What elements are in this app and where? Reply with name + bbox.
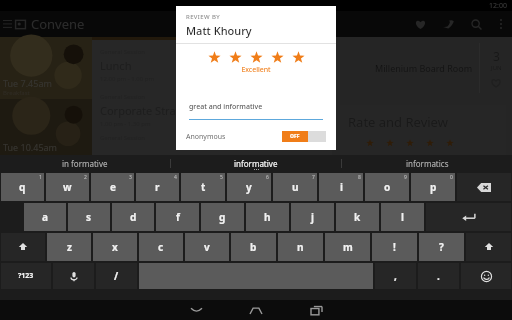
button[interactable]: q [1,173,44,201]
staticText: 3 [129,174,132,181]
button[interactable]: enter [426,203,511,231]
button[interactable]: o [365,173,409,201]
staticText: x [112,240,118,254]
staticText: r [155,180,160,194]
button[interactable]: More options [490,11,512,37]
staticText: Tue 7.45am [3,77,52,89]
staticText: 12:00 [489,1,507,11]
button[interactable]: j [291,203,334,231]
button[interactable]: Recent apps [286,300,346,320]
button[interactable]: z [47,233,91,261]
button[interactable]: d [112,203,154,231]
button[interactable]: in formative [0,155,170,172]
button[interactable]: Home [226,300,286,320]
button[interactable]: w [46,173,89,201]
button[interactable]: Hide keyboard [166,300,226,320]
staticText: s [86,210,92,224]
button[interactable]: t [181,173,225,201]
staticText: l [401,210,404,224]
button[interactable]: h [246,203,289,231]
staticText: c [158,240,164,254]
button[interactable]: back [457,173,511,201]
button[interactable]: General Session [100,48,332,83]
button[interactable]: p [411,173,455,201]
staticText: Rate and Review [348,113,448,131]
staticText: Tue 10.45am [3,141,58,153]
staticText: Corporate Strategy Pers [100,103,224,118]
staticText: 0 [450,174,453,181]
button[interactable]: x [93,233,137,261]
staticText: 3 [493,48,500,64]
staticText: 8 [358,174,361,181]
button[interactable]: s [68,203,110,231]
staticText: 1 [39,174,42,181]
staticText: Matt Khoury [186,23,252,38]
button[interactable]: l [381,203,424,231]
button[interactable]: Tue 7.45am [0,37,92,99]
staticText: Millenium Board Room [375,62,473,74]
button[interactable]: k [336,203,379,231]
button[interactable]: i [319,173,363,201]
button[interactable]: Tue 10.45am [0,99,92,155]
button[interactable]: y [227,173,271,201]
button[interactable]: b [231,233,276,261]
staticText: m [343,240,353,254]
button[interactable]: c [139,233,183,261]
button[interactable]: a [24,203,66,231]
button[interactable]: Rate 4 stars [267,51,288,64]
staticText: u [292,180,299,194]
button[interactable]: Menu [0,11,14,37]
button[interactable]: ! [372,233,417,261]
button[interactable]: Rate 1 stars [204,51,225,64]
button[interactable]: / [96,263,137,289]
button[interactable]: Rate 3 stars [246,51,267,64]
button[interactable]: Rate 2 stars [225,51,246,64]
button[interactable]: ?123 [1,263,51,289]
button[interactable]: informative [171,155,341,172]
button[interactable]: emoji [461,263,511,289]
staticText: q [19,180,26,194]
staticText: n [297,240,304,254]
button[interactable]: shift [466,233,511,261]
staticText: / [114,269,119,283]
staticText: ?123 [18,271,34,281]
button[interactable]: informatics [342,155,512,172]
staticText: great and informative [189,102,263,112]
button[interactable]: u [273,173,317,201]
button[interactable]: n [278,233,323,261]
staticText: 7 [312,174,315,181]
button[interactable]: v [185,233,229,261]
staticText: 9 [404,174,407,181]
staticText: f [176,210,180,224]
button[interactable]: Favorites [406,11,434,37]
button[interactable]: m [325,233,370,261]
button[interactable]: f [156,203,199,231]
button[interactable]: ? [419,233,464,261]
button[interactable]: Search [462,11,490,37]
button[interactable]: shift [1,233,45,261]
staticText: , [394,269,397,283]
button[interactable]: r [136,173,179,201]
staticText: 2 [84,174,87,181]
button[interactable]: , [375,263,416,289]
button[interactable]: Anonymous toggle, off [282,131,326,142]
staticText: e [110,180,116,194]
button[interactable]: Twitter [434,11,462,37]
staticText: o [384,180,391,194]
staticText: 6 [266,174,269,181]
button[interactable]: General Session [100,93,332,128]
staticText: informative [234,158,278,169]
button[interactable]: . [418,263,459,289]
button[interactable]: mic [53,263,94,289]
button[interactable]: e [91,173,134,201]
button[interactable]: g [201,203,244,231]
button[interactable]: Rate 5 stars [288,51,309,64]
staticText: 5 [220,174,223,181]
staticText: j [311,210,314,224]
staticText: i [340,180,343,194]
